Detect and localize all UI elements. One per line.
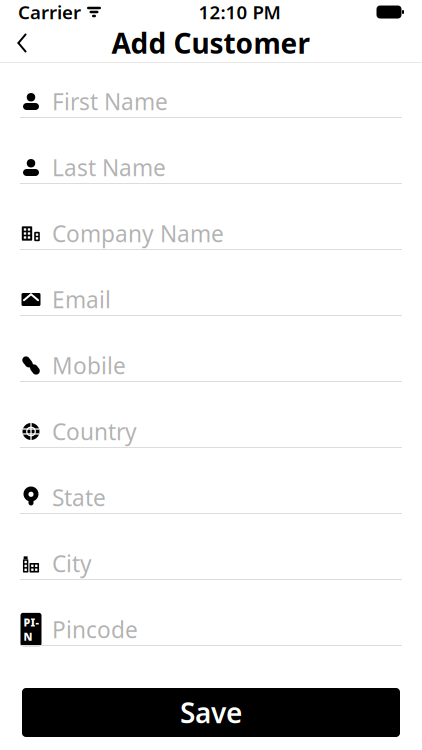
- staticText: Last Name: [52, 152, 166, 182]
- staticText: Country: [52, 416, 137, 446]
- button[interactable]: Company Name: [0, 218, 422, 284]
- button[interactable]: Mobile: [0, 350, 422, 416]
- button[interactable]: Back: [0, 24, 44, 62]
- button[interactable]: Save: [22, 688, 400, 737]
- staticText: Add Customer: [111, 24, 310, 62]
- staticText: State: [52, 482, 106, 512]
- staticText: Mobile: [52, 350, 126, 380]
- staticText: PIN: [23, 615, 38, 644]
- button[interactable]: Country: [0, 416, 422, 482]
- button[interactable]: PIN: [0, 614, 422, 680]
- button[interactable]: First Name: [0, 86, 422, 152]
- button[interactable]: Last Name: [0, 152, 422, 218]
- button[interactable]: Email: [0, 284, 422, 350]
- staticText: Pincode: [52, 614, 138, 644]
- staticText: 12:10 PM: [198, 0, 280, 24]
- button[interactable]: City: [0, 548, 422, 614]
- staticText: Email: [52, 284, 111, 314]
- staticText: Company Name: [52, 218, 224, 248]
- staticText: Carrier: [18, 0, 81, 24]
- staticText: Save: [180, 694, 242, 731]
- button[interactable]: State: [0, 482, 422, 548]
- staticText: City: [52, 548, 92, 578]
- staticText: First Name: [52, 86, 168, 116]
